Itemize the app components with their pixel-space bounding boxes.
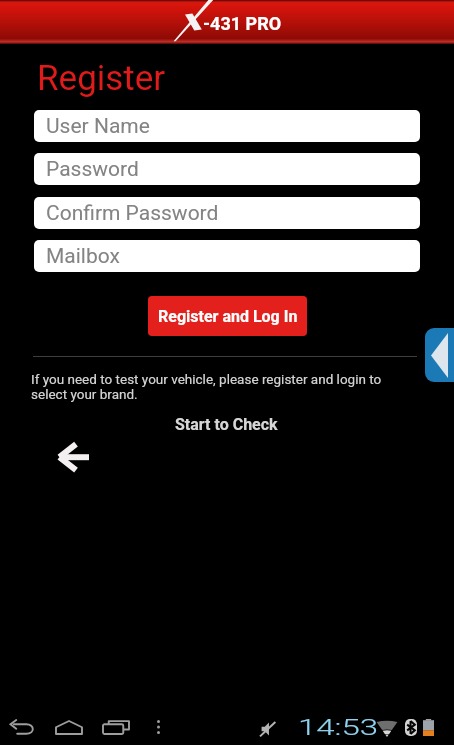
staticText: Password [46,157,139,182]
button[interactable]: Back [58,440,92,474]
button[interactable]: User Name [34,110,420,142]
staticText: Register [37,58,166,99]
button[interactable]: Home [52,712,86,742]
button[interactable]: Confirm Password [34,197,420,229]
button[interactable]: Password [34,153,420,185]
button[interactable]: Register and Log In [148,296,307,336]
button[interactable]: Recent apps [99,712,133,742]
button[interactable]: Open panel [425,328,454,382]
staticText: Start to Check [175,415,278,434]
staticText: If you need to test your vehicle, please… [31,371,389,402]
button[interactable]: Start to Check [175,415,278,434]
button[interactable]: Back [5,712,39,742]
button[interactable]: More options [145,712,171,742]
button[interactable]: Mailbox [34,240,420,272]
staticText: Mailbox [46,244,120,269]
staticText: -431 PRO [203,13,282,34]
staticText: Confirm Password [46,201,219,226]
staticText: User Name [46,114,150,139]
staticText: 14:53 [298,715,379,741]
staticText: Register and Log In [158,307,298,326]
